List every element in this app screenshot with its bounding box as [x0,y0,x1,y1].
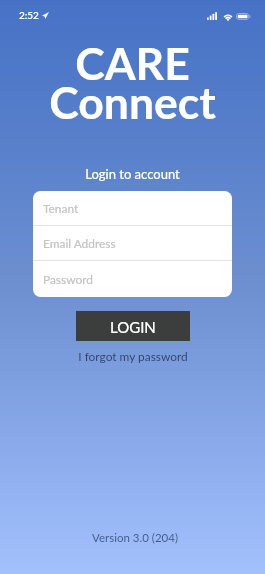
button[interactable]: Email Address [33,226,232,260]
staticText: Tenant [43,201,79,215]
button[interactable]: Password [33,261,232,297]
staticText: Connect [0,75,265,128]
staticText: 2:52 [19,9,39,21]
staticText: Version 3.0 (204) [92,531,178,545]
button[interactable]: I forgot my password [73,347,193,365]
staticText: Email Address [43,236,116,250]
staticText: CARE [0,36,265,89]
button[interactable]: LOGIN [76,311,190,341]
staticText: LOGIN [110,318,156,336]
other: Location services [42,12,49,19]
staticText: Password [43,272,93,286]
staticText: I forgot my password [78,349,188,363]
button[interactable]: Tenant [33,191,232,225]
staticText: Login to account [85,166,180,182]
